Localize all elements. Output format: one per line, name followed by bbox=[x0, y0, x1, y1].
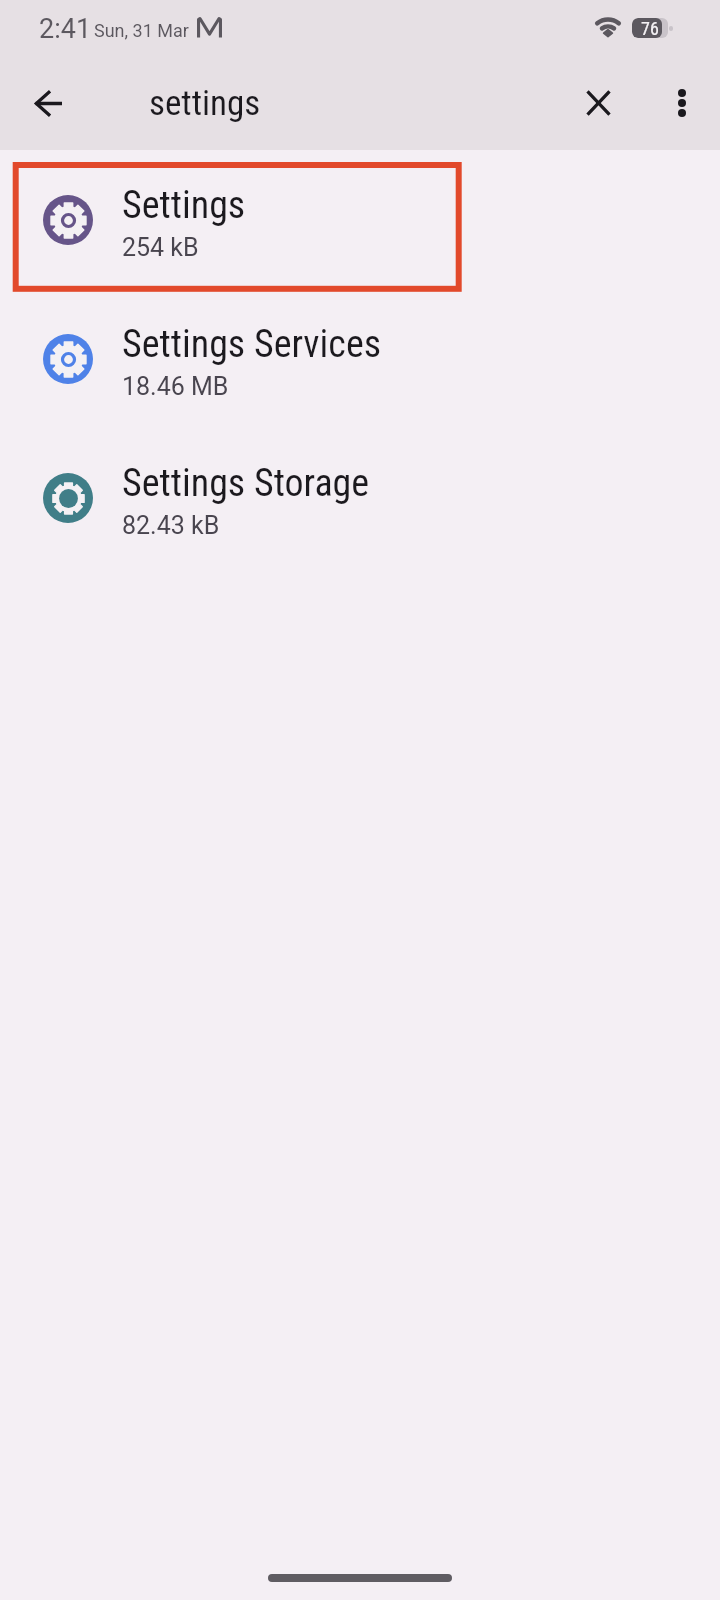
staticText: 2:41 bbox=[39, 13, 92, 45]
staticText: Settings Services bbox=[122, 322, 382, 367]
staticText: Settings bbox=[122, 183, 246, 228]
staticText: Sun, 31 Mar bbox=[94, 20, 189, 41]
button[interactable]: Back bbox=[14, 69, 82, 137]
staticText: 76 bbox=[641, 18, 659, 38]
button[interactable]: Settings Services bbox=[0, 289, 720, 428]
staticText: Settings Storage bbox=[122, 461, 370, 506]
button[interactable]: Settings Storage bbox=[0, 428, 720, 567]
staticText: 18.46 MB bbox=[122, 372, 229, 401]
staticText: 254 kB bbox=[122, 233, 199, 262]
staticText: 82.43 kB bbox=[122, 511, 220, 540]
button[interactable]: Settings bbox=[0, 150, 720, 289]
button[interactable]: Clear search bbox=[564, 69, 632, 137]
button[interactable]: More options bbox=[648, 69, 716, 137]
staticText: settings bbox=[149, 83, 261, 124]
